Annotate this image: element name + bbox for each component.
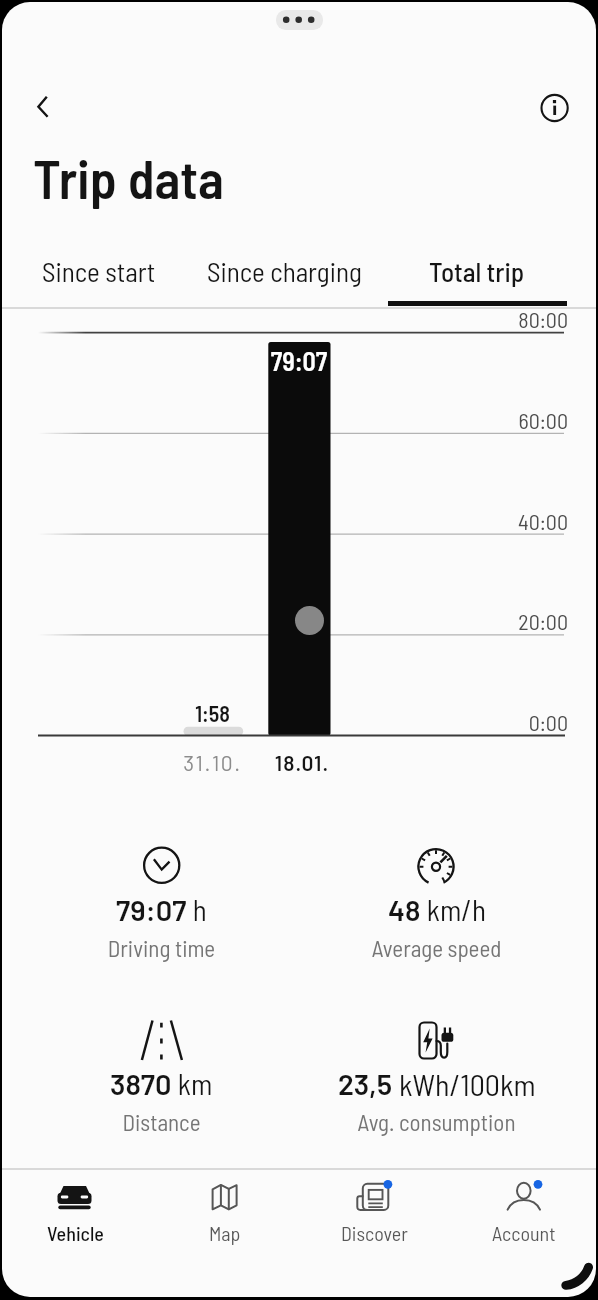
staticText: 60:00	[2, 407, 568, 433]
staticText: Driving time	[2, 934, 321, 962]
staticText: 40:00	[2, 508, 568, 534]
staticText: kWh/100km	[393, 1066, 536, 1102]
button[interactable]: Since charging	[197, 245, 372, 297]
button[interactable]	[26, 90, 62, 126]
staticText: Since start	[42, 255, 156, 287]
staticText: 18.01.	[269, 750, 335, 775]
staticText: km/h	[421, 892, 486, 927]
staticText: Avg. consumption	[275, 1108, 596, 1136]
staticText: Map	[209, 1221, 241, 1245]
staticText: Discover	[341, 1221, 408, 1245]
button[interactable]	[538, 91, 574, 127]
staticText: 80:00	[2, 306, 568, 332]
button[interactable]: Total trip	[419, 245, 535, 297]
button[interactable]: Account	[451, 1170, 596, 1255]
staticText: 79:07	[268, 345, 330, 376]
staticText: 20:00	[2, 608, 568, 634]
staticText: 23,5	[338, 1066, 393, 1101]
staticText: Total trip	[429, 255, 525, 287]
staticText: 0:00	[2, 709, 568, 735]
staticText: Distance	[2, 1108, 321, 1136]
staticText: 3870	[110, 1066, 172, 1101]
staticText: 31.10.	[180, 750, 245, 775]
staticText: 79:07	[116, 892, 187, 927]
staticText: Since charging	[207, 255, 362, 287]
button[interactable]: Discover	[301, 1170, 451, 1255]
staticText: Average speed	[275, 934, 596, 962]
staticText: 48	[388, 892, 421, 927]
staticText: h	[187, 892, 207, 927]
staticText: km	[172, 1066, 213, 1101]
button[interactable]: Vehicle	[2, 1170, 152, 1255]
staticText: Trip data	[33, 145, 224, 210]
staticText: Account	[492, 1221, 556, 1245]
button[interactable]: Map	[152, 1170, 302, 1255]
staticText: 1:58	[182, 700, 243, 726]
button[interactable]: Since start	[32, 245, 166, 297]
staticText: Vehicle	[47, 1221, 104, 1245]
